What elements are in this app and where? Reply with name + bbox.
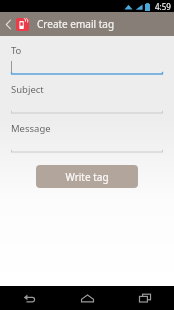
staticText: Create email tag [37, 17, 115, 31]
staticText: To [11, 44, 22, 57]
button[interactable]: Write tag [36, 165, 138, 188]
staticText: Subject [11, 83, 44, 96]
staticText: 4:59 [155, 1, 171, 12]
staticText: Message [11, 122, 51, 135]
button[interactable]: Navigate up [0, 12, 31, 36]
button[interactable]: Recent apps [116, 286, 174, 310]
button[interactable]: Message [0, 122, 174, 153]
button[interactable]: Subject [0, 83, 174, 114]
button[interactable]: Home [58, 286, 116, 310]
button[interactable]: To [0, 44, 174, 75]
staticText: Write tag [65, 170, 109, 184]
button[interactable]: Back [0, 286, 58, 310]
